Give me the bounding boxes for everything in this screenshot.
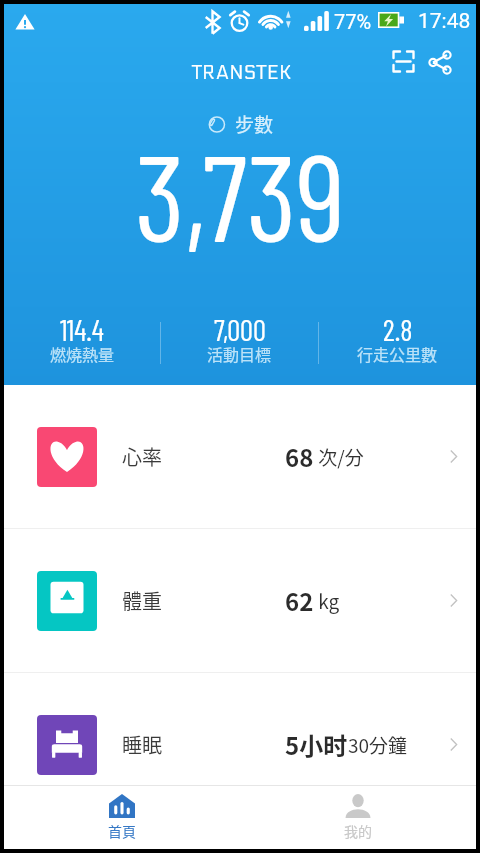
button[interactable]: 睡眠 — [4, 673, 476, 816]
staticText: 首頁 — [108, 821, 136, 841]
staticText: 68 — [285, 439, 314, 474]
button[interactable]: 心率 — [4, 385, 476, 528]
staticText: 5小时 — [285, 727, 348, 762]
staticText: TRANSTEK — [192, 62, 292, 85]
staticText: 行走公里數 — [357, 342, 438, 365]
button[interactable]: Share — [418, 37, 462, 81]
staticText: 活動目標 — [207, 342, 272, 365]
staticText: 心率 — [122, 442, 162, 471]
staticText: 30分鐘 — [348, 731, 408, 759]
button[interactable]: Scan — [381, 36, 425, 80]
staticText: 77% — [334, 10, 372, 33]
button[interactable]: 我的 — [240, 786, 476, 849]
button[interactable]: 首頁 — [4, 786, 240, 849]
staticText: 體重 — [122, 586, 162, 615]
button[interactable]: 體重 — [4, 529, 476, 672]
staticText: 燃燒熱量 — [50, 342, 115, 365]
staticText: 62 — [285, 583, 314, 618]
staticText: 114.4 — [60, 312, 104, 347]
staticText: 3,739 — [135, 120, 345, 266]
staticText: 2.8 — [383, 312, 413, 347]
staticText: 次/分 — [314, 443, 364, 471]
staticText: kg — [314, 587, 340, 615]
staticText: 睡眠 — [122, 730, 162, 759]
staticText: 7,000 — [214, 312, 266, 347]
staticText: 步數 — [235, 110, 274, 138]
staticText: 17:48 — [418, 9, 471, 34]
staticText: 我的 — [344, 821, 372, 841]
